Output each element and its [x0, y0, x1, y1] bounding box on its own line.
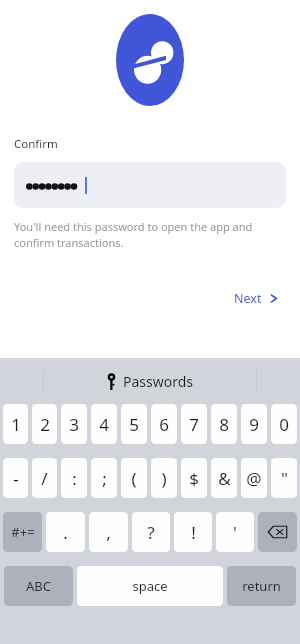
button[interactable]: ;: [91, 458, 117, 498]
button[interactable]: ): [151, 458, 177, 498]
staticText: 4: [99, 413, 109, 436]
staticText: You'll need this password to open the ap…: [14, 219, 264, 250]
button[interactable]: return: [227, 566, 296, 606]
staticText: 1: [11, 413, 21, 436]
button[interactable]: $: [181, 458, 207, 498]
staticText: ABC: [26, 577, 51, 595]
staticText: 0: [279, 413, 289, 436]
button[interactable]: ": [271, 458, 297, 498]
staticText: ): [161, 467, 167, 490]
staticText: 3: [69, 413, 79, 436]
button[interactable]: Passwords key: [102, 369, 199, 394]
button[interactable]: 1: [3, 404, 28, 444]
staticText: 6: [159, 413, 169, 436]
staticText: .: [63, 521, 68, 544]
other: Passwords key: [107, 373, 116, 390]
button[interactable]: !: [174, 512, 212, 552]
staticText: ': [233, 521, 237, 544]
staticText: 2: [40, 413, 50, 436]
staticText: &: [218, 467, 231, 490]
button[interactable]: Backspace: [258, 512, 297, 552]
button[interactable]: 0: [271, 404, 297, 444]
button[interactable]: &: [211, 458, 237, 498]
button[interactable]: 3: [61, 404, 87, 444]
button[interactable]: ': [216, 512, 254, 552]
button[interactable]: 9: [241, 404, 267, 444]
button[interactable]: 2: [32, 404, 57, 444]
staticText: /: [41, 467, 48, 490]
button[interactable]: ?: [132, 512, 170, 552]
button[interactable]: [14, 162, 286, 208]
staticText: (: [131, 467, 137, 490]
button[interactable]: @: [241, 458, 267, 498]
button[interactable]: Next: [228, 286, 286, 311]
staticText: $: [189, 467, 199, 490]
button[interactable]: :: [61, 458, 87, 498]
staticText: 9: [249, 413, 259, 436]
button[interactable]: 4: [91, 404, 117, 444]
button[interactable]: #+=: [3, 512, 42, 552]
staticText: ?: [147, 521, 155, 544]
staticText: return: [242, 577, 281, 595]
other: Backspace: [267, 524, 288, 540]
staticText: 7: [189, 413, 199, 436]
button[interactable]: 7: [181, 404, 207, 444]
button[interactable]: (: [121, 458, 147, 498]
staticText: @: [246, 467, 262, 490]
staticText: :: [72, 467, 77, 490]
staticText: ": [281, 467, 288, 490]
button[interactable]: ,: [89, 512, 128, 552]
staticText: 5: [129, 413, 139, 436]
button[interactable]: -: [3, 458, 28, 498]
staticText: Next: [234, 290, 262, 307]
staticText: -: [13, 467, 19, 490]
staticText: 8: [219, 413, 229, 436]
staticText: space: [132, 577, 168, 595]
staticText: ;: [102, 467, 107, 490]
button[interactable]: 6: [151, 404, 177, 444]
button[interactable]: space: [77, 566, 223, 606]
button[interactable]: .: [46, 512, 85, 552]
button[interactable]: 8: [211, 404, 237, 444]
staticText: ,: [106, 521, 111, 544]
staticText: Passwords: [123, 372, 194, 391]
staticText: Confirm: [14, 136, 58, 152]
button[interactable]: /: [32, 458, 57, 498]
staticText: #+=: [11, 523, 35, 541]
staticText: !: [191, 521, 196, 544]
button[interactable]: ABC: [4, 566, 73, 606]
button[interactable]: 5: [121, 404, 147, 444]
